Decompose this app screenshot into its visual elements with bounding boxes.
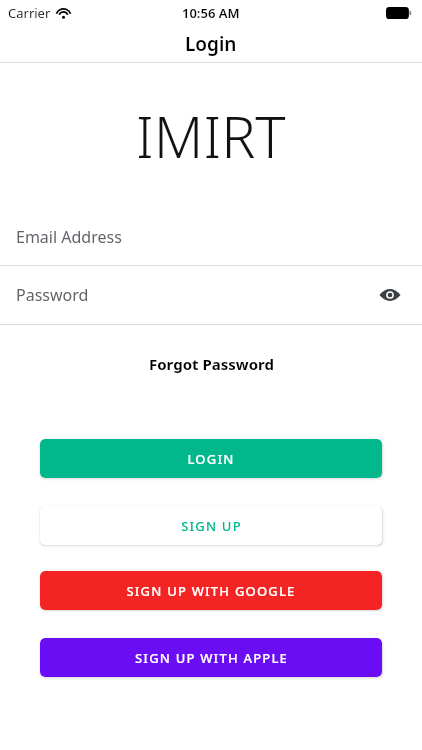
staticText: Email Address xyxy=(16,226,122,248)
button[interactable]: SIGN UP WITH APPLE xyxy=(40,638,382,677)
staticText: Password xyxy=(16,284,89,306)
staticText: Carrier xyxy=(8,4,51,22)
staticText: SIGN UP xyxy=(181,517,242,535)
button[interactable]: LOGIN xyxy=(40,439,382,478)
button[interactable]: Show password xyxy=(372,277,408,313)
button[interactable]: SIGN UP xyxy=(40,506,382,545)
button[interactable]: Forgot Password xyxy=(139,351,284,377)
staticText: 10:56 AM xyxy=(182,4,240,22)
button[interactable]: Password xyxy=(0,266,422,324)
button[interactable]: SIGN UP WITH GOOGLE xyxy=(40,571,382,610)
staticText: LOGIN xyxy=(187,450,235,468)
staticText: Login xyxy=(185,31,237,57)
staticText: SIGN UP WITH GOOGLE xyxy=(126,582,296,600)
button[interactable]: Email Address xyxy=(0,208,422,265)
staticText: IMIRT xyxy=(136,97,286,175)
staticText: SIGN UP WITH APPLE xyxy=(135,649,288,667)
